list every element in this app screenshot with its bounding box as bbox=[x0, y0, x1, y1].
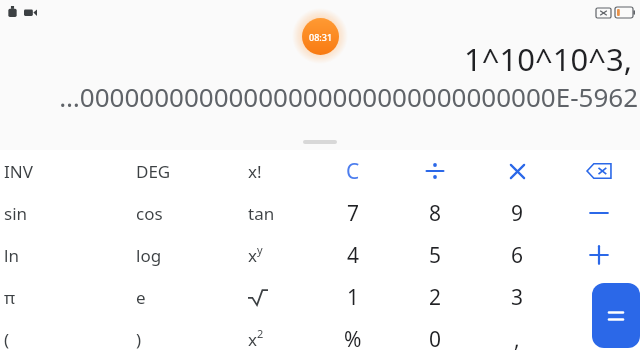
staticText: 6 bbox=[511, 241, 524, 270]
staticText: 4 bbox=[347, 241, 360, 270]
staticText: y bbox=[257, 242, 263, 257]
button[interactable]: ( bbox=[0, 318, 112, 360]
staticText: 2 bbox=[257, 326, 264, 341]
staticText: 1^10^10^3, bbox=[464, 38, 632, 80]
button[interactable]: Equals bbox=[592, 283, 640, 348]
staticText: C bbox=[346, 157, 360, 186]
staticText: , bbox=[514, 325, 520, 354]
button[interactable]: 0 bbox=[394, 318, 476, 360]
other: Backspace bbox=[558, 150, 640, 192]
staticText: tan bbox=[248, 202, 275, 225]
button[interactable]: % bbox=[312, 318, 394, 360]
staticText: e bbox=[136, 286, 146, 309]
staticText: cos bbox=[136, 202, 163, 225]
button[interactable]: log bbox=[112, 234, 224, 276]
button[interactable]: ln bbox=[0, 234, 112, 276]
button[interactable]: e bbox=[112, 276, 224, 318]
button[interactable]: 6 bbox=[476, 234, 558, 276]
button[interactable] bbox=[394, 150, 476, 192]
button[interactable]: 7 bbox=[312, 192, 394, 234]
button[interactable] bbox=[224, 276, 312, 318]
staticText: ln bbox=[4, 244, 19, 267]
button[interactable]: INV bbox=[0, 150, 112, 192]
staticText: x bbox=[248, 328, 257, 351]
button[interactable]: 1 bbox=[312, 276, 394, 318]
button[interactable]: , bbox=[476, 318, 558, 360]
button[interactable]: 8 bbox=[394, 192, 476, 234]
button[interactable]: cos bbox=[112, 192, 224, 234]
button[interactable]: ) bbox=[112, 318, 224, 360]
staticText: …00000000000000000000000000000000E-5962 bbox=[59, 79, 638, 114]
staticText: % bbox=[344, 325, 362, 354]
button[interactable]: Expand keypad bbox=[303, 140, 337, 144]
button[interactable]: Clock bbox=[302, 18, 339, 55]
staticText: INV bbox=[4, 160, 33, 183]
button[interactable]: x bbox=[224, 318, 312, 360]
staticText: 3 bbox=[511, 283, 524, 312]
button[interactable]: x bbox=[224, 234, 312, 276]
staticText: π bbox=[4, 286, 16, 309]
button[interactable]: 3 bbox=[476, 276, 558, 318]
button[interactable]: π bbox=[0, 276, 112, 318]
staticText: ( bbox=[4, 328, 10, 351]
button[interactable] bbox=[476, 150, 558, 192]
staticText: 5 bbox=[429, 241, 442, 270]
staticText: 08:31 bbox=[309, 31, 333, 43]
staticText: 9 bbox=[511, 199, 524, 228]
staticText: sin bbox=[4, 202, 28, 225]
button[interactable]: 9 bbox=[476, 192, 558, 234]
staticText: 1 bbox=[347, 283, 360, 312]
button[interactable]: C bbox=[312, 150, 394, 192]
button[interactable]: tan bbox=[224, 192, 312, 234]
staticText: 8 bbox=[429, 199, 442, 228]
staticText: 7 bbox=[347, 199, 360, 228]
button[interactable]: DEG bbox=[112, 150, 224, 192]
staticText: 0 bbox=[429, 325, 442, 354]
staticText: ) bbox=[136, 328, 142, 351]
button[interactable]: x! bbox=[224, 150, 312, 192]
staticText: 2 bbox=[429, 283, 442, 312]
staticText: log bbox=[136, 244, 162, 267]
button[interactable]: sin bbox=[0, 192, 112, 234]
button[interactable] bbox=[558, 192, 640, 234]
staticText: x! bbox=[248, 160, 262, 183]
staticText: DEG bbox=[136, 160, 171, 183]
button[interactable]: 5 bbox=[394, 234, 476, 276]
button[interactable]: 2 bbox=[394, 276, 476, 318]
button[interactable] bbox=[558, 234, 640, 276]
button[interactable]: Backspace bbox=[558, 150, 640, 192]
button[interactable]: 4 bbox=[312, 234, 394, 276]
staticText: x bbox=[248, 244, 257, 267]
